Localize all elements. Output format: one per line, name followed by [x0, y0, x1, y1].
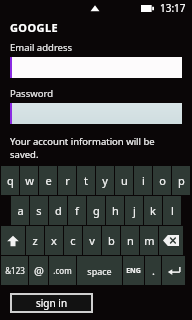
staticText: @ — [34, 263, 44, 278]
button[interactable]: f — [68, 196, 86, 225]
button[interactable]: p — [172, 166, 190, 195]
button[interactable]: d — [49, 196, 67, 225]
button[interactable]: u — [115, 166, 133, 195]
staticText: h — [112, 203, 119, 218]
staticText: z — [32, 233, 38, 248]
button[interactable]: i — [134, 166, 152, 195]
staticText: ENG — [126, 266, 141, 276]
staticText: sign in — [36, 296, 68, 310]
staticText: .com — [53, 265, 72, 276]
staticText: c — [70, 233, 76, 248]
button[interactable]: .com — [49, 256, 76, 285]
button[interactable] — [10, 103, 182, 124]
button[interactable]: g — [87, 196, 105, 225]
button[interactable]: @ — [29, 256, 48, 285]
staticText: e — [45, 173, 52, 188]
button[interactable]: Backspace — [159, 226, 183, 255]
staticText: g — [93, 203, 100, 218]
staticText: b — [108, 233, 115, 248]
staticText: a — [17, 203, 24, 218]
staticText: . — [152, 263, 155, 278]
button[interactable]: r — [58, 166, 76, 195]
staticText: w — [25, 173, 34, 188]
button[interactable]: c — [64, 226, 82, 255]
button[interactable]: . — [145, 256, 161, 285]
button[interactable]: q — [1, 166, 19, 195]
staticText: t — [84, 173, 88, 188]
button[interactable]: b — [102, 226, 120, 255]
staticText: q — [7, 173, 14, 188]
button[interactable]: v — [83, 226, 101, 255]
button[interactable]: y — [96, 166, 114, 195]
staticText: y — [102, 173, 108, 188]
staticText: j — [133, 203, 136, 218]
button[interactable]: sign in — [10, 293, 93, 313]
button[interactable]: h — [106, 196, 124, 225]
staticText: s — [36, 203, 42, 218]
button[interactable]: z — [26, 226, 44, 255]
staticText: i — [142, 173, 145, 188]
staticText: GOOGLE — [10, 20, 59, 35]
staticText: &123 — [5, 265, 25, 276]
staticText: m — [144, 233, 155, 248]
staticText: Email address — [10, 41, 73, 54]
button[interactable]: t — [77, 166, 95, 195]
button[interactable]: e — [39, 166, 57, 195]
button[interactable] — [10, 57, 182, 78]
button[interactable]: k — [144, 196, 162, 225]
staticText: k — [150, 203, 156, 218]
button[interactable]: s — [30, 196, 48, 225]
staticText: Password — [10, 87, 53, 100]
staticText: l — [171, 203, 174, 218]
staticText: n — [127, 233, 134, 248]
staticText: Your account information will be saved. — [10, 135, 182, 161]
button[interactable]: a — [11, 196, 29, 225]
staticText: u — [121, 173, 128, 188]
button[interactable]: l — [163, 196, 181, 225]
staticText: space — [87, 265, 112, 277]
button[interactable]: Shift — [1, 226, 25, 255]
staticText: r — [65, 173, 70, 188]
button[interactable]: n — [121, 226, 139, 255]
staticText: d — [55, 203, 62, 218]
button[interactable]: &123 — [1, 256, 28, 285]
button[interactable]: w — [20, 166, 38, 195]
button[interactable]: ENG — [123, 256, 144, 285]
button[interactable]: j — [125, 196, 143, 225]
staticText: v — [89, 233, 95, 248]
staticText: x — [51, 233, 57, 248]
button[interactable]: space — [77, 256, 122, 285]
button[interactable]: x — [45, 226, 63, 255]
button[interactable]: Enter — [162, 256, 185, 285]
staticText: f — [75, 203, 79, 218]
staticText: 13:17 — [160, 1, 186, 15]
staticText: p — [178, 173, 185, 188]
staticText: o — [159, 173, 166, 188]
button[interactable]: o — [153, 166, 171, 195]
button[interactable]: m — [140, 226, 158, 255]
